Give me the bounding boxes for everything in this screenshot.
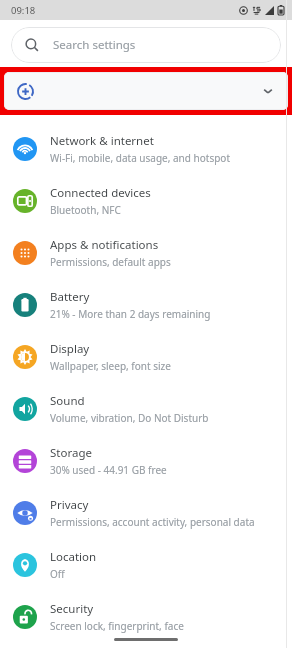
staticText: Location	[50, 549, 97, 565]
staticText: 09:18	[11, 4, 36, 17]
staticText: 21% - More than 2 days remaining	[50, 307, 211, 321]
other: Expand	[262, 85, 274, 97]
button[interactable]: Location	[0, 539, 292, 591]
staticText: Sound	[50, 393, 85, 409]
staticText: 30% used - 44.91 GB free	[50, 463, 167, 477]
button[interactable]: Storage	[0, 435, 292, 487]
staticText: Network & internet	[50, 133, 154, 149]
staticText: Screen lock, fingerprint, face	[50, 619, 184, 633]
button[interactable]: Apps & notifications	[0, 227, 292, 279]
button[interactable]: Battery	[0, 279, 292, 331]
button[interactable]: Privacy	[0, 487, 292, 539]
staticText: Battery	[50, 289, 90, 305]
staticText: Security	[50, 601, 94, 617]
staticText: Display	[50, 341, 90, 357]
staticText: Bluetooth, NFC	[50, 203, 121, 217]
staticText: Search settings	[53, 37, 136, 53]
staticText: Permissions, account activity, personal …	[50, 515, 255, 529]
staticText: Privacy	[50, 497, 89, 513]
button[interactable]: Expand	[4, 72, 288, 110]
staticText: Storage	[50, 445, 92, 461]
button[interactable]: Connected devices	[0, 175, 292, 227]
staticText: Off	[50, 567, 65, 581]
staticText: Permissions, default apps	[50, 255, 171, 269]
staticText: Connected devices	[50, 185, 151, 201]
staticText: Apps & notifications	[50, 237, 159, 253]
staticText: Wi-Fi, mobile, data usage, and hotspot	[50, 151, 230, 165]
button[interactable]: Security	[0, 591, 292, 643]
staticText: Wallpaper, sleep, font size	[50, 359, 171, 373]
button[interactable]: Network & internet	[0, 123, 292, 175]
button[interactable]: Sound	[0, 383, 292, 435]
button[interactable]: Display	[0, 331, 292, 383]
staticText: Volume, vibration, Do Not Disturb	[50, 411, 209, 425]
button[interactable]: Search settings	[11, 27, 281, 63]
